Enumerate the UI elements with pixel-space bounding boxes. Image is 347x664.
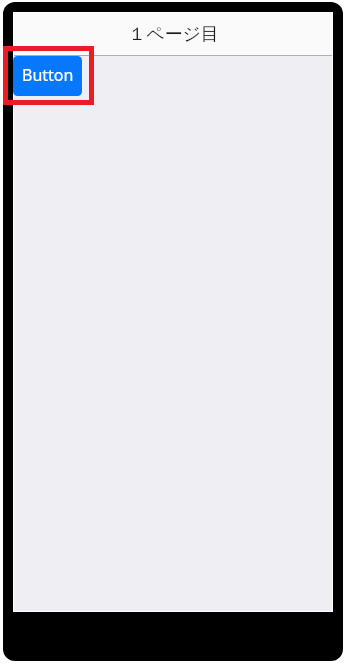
button[interactable]: Button bbox=[13, 56, 82, 96]
staticText: Button bbox=[22, 64, 74, 86]
staticText: １ページ目 bbox=[128, 23, 219, 46]
